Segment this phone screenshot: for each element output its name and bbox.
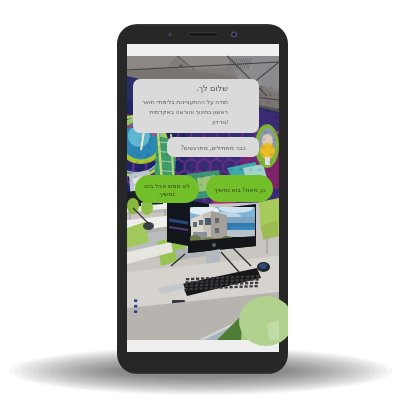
staticText: ‫שלום לך.‬ — [196, 82, 228, 93]
staticText: ‫כן, מאוד! בוא נמשיך‬ — [214, 185, 266, 193]
button[interactable]: ‫לא ממש אבל בוא נמשיך‬ — [135, 175, 199, 203]
button[interactable]: ‫שלום לך.‬ — [133, 79, 259, 133]
button[interactable]: ‫כבר מתחילים, מתרגשים?‬ — [167, 137, 259, 157]
staticText: ‫תודה על ההתעניינות בלימודי תואר ראשון ב… — [141, 98, 228, 125]
staticText: ‫כבר מתחילים, מתרגשים?‬ — [181, 143, 246, 151]
button[interactable]: ‫כן, מאוד! בוא נמשיך‬ — [206, 175, 273, 202]
staticText: ‫לא ממש אבל בוא נמשיך‬ — [144, 181, 190, 198]
